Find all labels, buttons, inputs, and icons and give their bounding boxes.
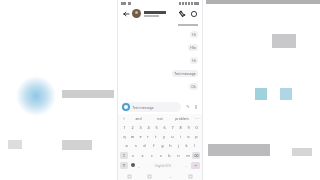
button[interactable]: g <box>158 141 166 150</box>
button[interactable]: More options <box>189 9 199 19</box>
button[interactable]: Back <box>121 9 130 18</box>
button[interactable]: y <box>160 132 168 141</box>
staticText: x <box>141 153 144 158</box>
staticText: ⌄ <box>169 175 172 179</box>
staticText: 2 <box>131 125 134 130</box>
button[interactable]: Emoji <box>130 162 136 168</box>
button[interactable]: Send <box>192 103 199 110</box>
staticText: Hi <box>192 58 196 63</box>
staticText: . <box>185 163 187 168</box>
staticText: z <box>132 153 134 158</box>
staticText: ⌫ <box>193 154 199 158</box>
staticText: Test message <box>174 71 196 76</box>
staticText: problem <box>175 116 189 121</box>
button[interactable]: More suggestions <box>193 116 200 121</box>
button[interactable]: and <box>127 114 149 123</box>
button[interactable]: Attach <box>183 102 192 111</box>
button[interactable]: v <box>156 150 165 160</box>
staticText: 8 <box>179 125 182 130</box>
button[interactable]: Enter <box>191 162 200 169</box>
button[interactable]: Home <box>146 173 153 180</box>
staticText: h <box>169 143 172 148</box>
staticText: j <box>178 143 179 148</box>
button[interactable]: not <box>149 114 171 123</box>
staticText: 7 <box>171 125 174 130</box>
staticText: y <box>163 134 165 139</box>
button[interactable]: 7 <box>168 123 176 132</box>
button[interactable]: i <box>176 132 184 141</box>
staticText: g <box>161 143 164 148</box>
staticText: r <box>147 134 149 139</box>
button[interactable]: 2 <box>128 123 136 132</box>
button[interactable]: English (US) <box>142 162 183 169</box>
button[interactable]: Shift <box>120 152 128 159</box>
button[interactable]: Test message <box>172 70 198 77</box>
staticText: i <box>180 134 181 139</box>
button[interactable]: j <box>174 141 182 150</box>
staticText: c <box>151 153 153 158</box>
button[interactable]: Ok <box>189 83 198 90</box>
button[interactable]: Previous <box>120 115 127 122</box>
staticText: o <box>187 134 190 139</box>
button[interactable]: Test message <box>121 102 181 112</box>
staticText: u <box>171 134 174 139</box>
button[interactable]: o <box>184 132 192 141</box>
button[interactable]: Recents <box>126 173 133 180</box>
button[interactable]: Symbols <box>120 162 128 169</box>
button[interactable]: Hlo <box>188 44 198 51</box>
button[interactable]: d <box>140 141 149 150</box>
staticText: Hi <box>192 32 196 37</box>
staticText: p <box>195 134 198 139</box>
button[interactable]: t <box>152 132 160 141</box>
button[interactable]: 4 <box>144 123 152 132</box>
button[interactable]: q <box>120 132 128 141</box>
button[interactable]: f <box>149 141 158 150</box>
button[interactable]: c <box>147 150 156 160</box>
button[interactable]: m <box>183 150 192 160</box>
button[interactable]: Hi <box>190 31 198 38</box>
staticText: 5 <box>155 125 158 130</box>
staticText: f <box>153 143 155 148</box>
staticText: ⋯ <box>195 116 199 121</box>
button[interactable]: w <box>128 132 136 141</box>
button[interactable]: 9 <box>184 123 192 132</box>
button[interactable]: z <box>128 150 138 160</box>
staticText: l <box>194 143 195 148</box>
staticText: ⇧ <box>122 153 126 158</box>
button[interactable]: Call <box>177 9 187 19</box>
button[interactable] <box>132 9 177 18</box>
button[interactable]: Backspace <box>192 152 200 159</box>
button[interactable]: Hi <box>190 57 198 64</box>
button[interactable]: . <box>183 163 189 168</box>
button[interactable]: a <box>122 141 131 150</box>
button[interactable]: 1 <box>120 123 128 132</box>
staticText: ‹ <box>123 115 125 122</box>
button[interactable]: b <box>165 150 174 160</box>
staticText: 6 <box>163 125 166 130</box>
button[interactable]: x <box>138 150 147 160</box>
button[interactable]: Back <box>167 173 174 180</box>
button[interactable]: 6 <box>160 123 168 132</box>
button[interactable]: s <box>131 141 140 150</box>
button[interactable]: k <box>182 141 190 150</box>
staticText: Ok <box>191 84 196 89</box>
button[interactable]: p <box>192 132 200 141</box>
button[interactable]: e <box>136 132 144 141</box>
staticText: b <box>168 153 171 158</box>
button[interactable]: 5 <box>152 123 160 132</box>
button[interactable]: Hide keyboard <box>187 173 194 180</box>
button[interactable]: n <box>174 150 183 160</box>
button[interactable]: r <box>144 132 152 141</box>
staticText: d <box>143 143 146 148</box>
button[interactable]: , <box>136 163 142 168</box>
staticText: e <box>139 134 142 139</box>
button[interactable]: 3 <box>136 123 144 132</box>
button[interactable]: 0 <box>192 123 200 132</box>
staticText: 9 <box>187 125 190 130</box>
staticText: and <box>135 116 142 121</box>
button[interactable]: 8 <box>176 123 184 132</box>
button[interactable]: problem <box>171 114 193 123</box>
button[interactable]: h <box>166 141 174 150</box>
button[interactable]: l <box>190 141 198 150</box>
button[interactable]: u <box>168 132 176 141</box>
